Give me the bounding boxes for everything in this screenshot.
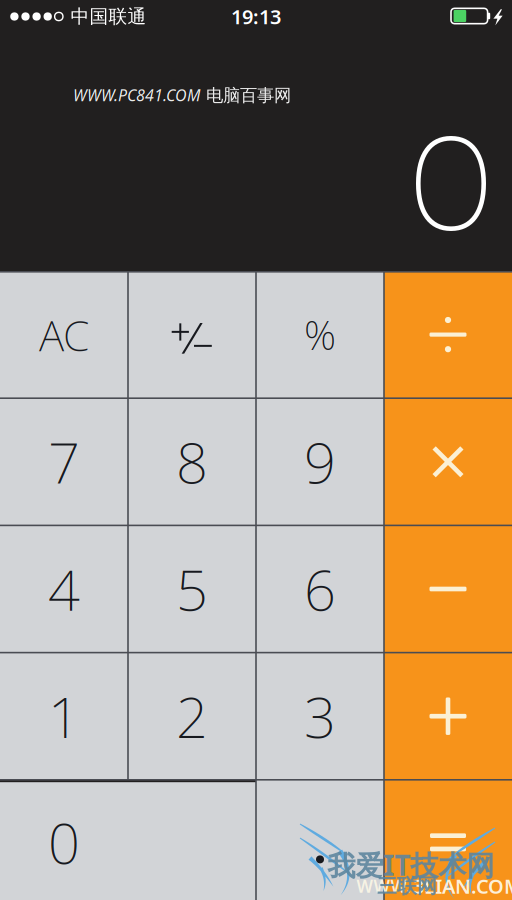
staticText: 中国联通 bbox=[71, 5, 147, 28]
staticText: WWW. bbox=[356, 874, 411, 897]
button[interactable]: 0 bbox=[0, 782, 256, 900]
button[interactable]: AC bbox=[0, 271, 128, 398]
button[interactable]: 4 bbox=[0, 525, 128, 653]
button[interactable]: 1 bbox=[0, 653, 128, 780]
staticText: 我爱IT技术网 bbox=[327, 846, 494, 884]
button[interactable]: Equals bbox=[384, 780, 512, 900]
staticText: 9 bbox=[304, 425, 336, 499]
staticText: 19:13 bbox=[231, 3, 281, 30]
staticText: WWW.PC841.COM bbox=[73, 84, 200, 106]
staticText: 3LIAN.COM bbox=[413, 873, 512, 899]
staticText: 8 bbox=[176, 425, 208, 499]
staticText: 3 bbox=[304, 679, 336, 753]
button[interactable]: 8 bbox=[128, 398, 256, 525]
button[interactable]: 5 bbox=[128, 525, 256, 653]
button[interactable]: % bbox=[256, 271, 384, 398]
staticText: 5 bbox=[176, 552, 208, 626]
button[interactable]: 7 bbox=[0, 398, 128, 525]
button[interactable]: 3 bbox=[256, 653, 384, 780]
staticText: 电脑百事网 bbox=[206, 85, 291, 106]
button[interactable]: Decimal point bbox=[256, 780, 384, 900]
button[interactable]: 2 bbox=[128, 653, 256, 780]
staticText: 7 bbox=[48, 425, 80, 499]
button[interactable]: Divide bbox=[384, 271, 512, 398]
button[interactable]: Subtract bbox=[384, 525, 512, 653]
button[interactable]: 9 bbox=[256, 398, 384, 525]
staticText: 0 bbox=[48, 805, 80, 879]
staticText: 2 bbox=[176, 679, 208, 753]
button[interactable]: 6 bbox=[256, 525, 384, 653]
staticText: 1 bbox=[48, 679, 80, 753]
staticText: 三联网 bbox=[377, 874, 437, 898]
button[interactable]: Multiply bbox=[384, 398, 512, 525]
staticText: % bbox=[304, 308, 336, 361]
button[interactable]: Toggle sign bbox=[128, 271, 256, 398]
staticText: AC bbox=[39, 306, 89, 363]
staticText: 6 bbox=[304, 552, 336, 626]
button[interactable]: Add bbox=[384, 653, 512, 780]
staticText: 4 bbox=[48, 552, 80, 626]
